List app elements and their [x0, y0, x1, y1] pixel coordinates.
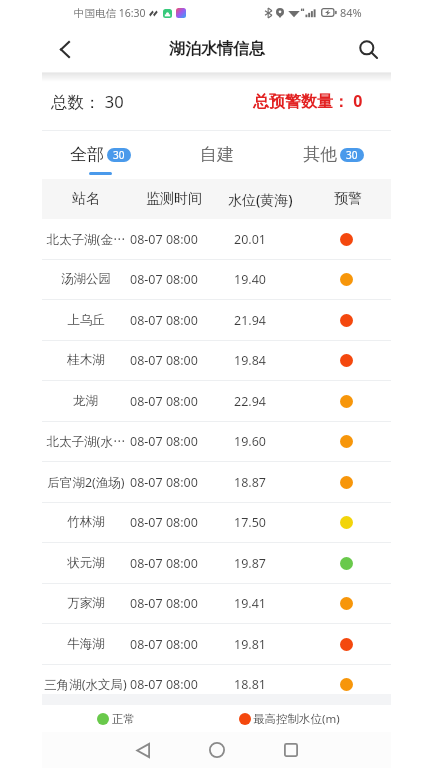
staticText: 17.50 [234, 514, 266, 531]
staticText: 19.87 [234, 555, 266, 572]
button[interactable]: 万家湖 [42, 583, 391, 624]
staticText: 08-07 08:00 [130, 231, 198, 248]
button[interactable]: 全部 [42, 131, 159, 179]
staticText: 正常 [112, 712, 135, 726]
button[interactable]: Back [48, 32, 82, 66]
staticText: 全部 [70, 144, 104, 165]
button[interactable]: 后官湖2(渔场) [42, 462, 391, 503]
staticText: 08-07 08:00 [130, 352, 198, 369]
staticText: 84% [340, 5, 362, 20]
staticText: 北太子湖(水厂东) [43, 433, 129, 450]
button[interactable]: Recents [273, 732, 309, 768]
staticText: 21.94 [234, 312, 266, 329]
staticText: 自建 [200, 144, 234, 165]
staticText: 18.87 [234, 474, 266, 491]
staticText: 19.60 [234, 433, 266, 450]
staticText: 08-07 08:00 [130, 555, 198, 572]
button[interactable]: 竹林湖 [42, 502, 391, 543]
staticText: 竹林湖 [67, 514, 105, 530]
staticText: 预警 [334, 190, 362, 208]
button[interactable]: 北太子湖(水厂东) [42, 421, 391, 462]
staticText: 08-07 08:00 [130, 595, 198, 612]
button[interactable]: 自建 [159, 131, 275, 179]
staticText: 08-07 08:00 [130, 474, 198, 491]
staticText: 20.01 [234, 231, 266, 248]
staticText: 08-07 08:00 [130, 514, 198, 531]
staticText: 其他 [303, 144, 337, 165]
button[interactable]: 桂木湖 [42, 340, 391, 381]
staticText: 08-07 08:00 [130, 393, 198, 410]
button[interactable]: 北太子湖(金银湖) [42, 219, 391, 260]
staticText: 龙湖 [73, 393, 98, 409]
button[interactable]: Back [125, 732, 161, 768]
staticText: 22.94 [234, 393, 266, 410]
staticText: 19.40 [234, 271, 266, 288]
staticText: 30 [113, 148, 125, 162]
staticText: 三角湖(水文局) [44, 676, 127, 693]
staticText: 总数： 30 [51, 90, 124, 113]
staticText: 汤湖公园 [61, 271, 111, 287]
staticText: 北太子湖(金银湖) [43, 231, 129, 248]
staticText: 18.81 [234, 676, 266, 693]
staticText: 中国电信 16:30 [74, 6, 146, 20]
staticText: 08-07 08:00 [130, 676, 198, 693]
staticText: 湖泊水情信息 [169, 39, 265, 59]
staticText: 状元湖 [67, 555, 105, 571]
staticText: 08-07 08:00 [130, 312, 198, 329]
staticText: 桂木湖 [67, 352, 105, 368]
staticText: 19.41 [234, 595, 266, 612]
button[interactable]: 其他 [275, 131, 391, 179]
staticText: 水位(黄海) [228, 190, 293, 209]
staticText: 19.84 [234, 352, 266, 369]
staticText: 监测时间 [146, 190, 202, 208]
staticText: 上乌丘 [67, 312, 105, 328]
staticText: 万家湖 [67, 595, 105, 611]
staticText: 08-07 08:00 [130, 433, 198, 450]
button[interactable]: 状元湖 [42, 543, 391, 584]
staticText: 08-07 08:00 [130, 636, 198, 653]
button[interactable]: 上乌丘 [42, 300, 391, 341]
staticText: 后官湖2(渔场) [47, 474, 125, 491]
button[interactable]: 牛海湖 [42, 624, 391, 665]
staticText: 30 [346, 148, 358, 162]
button[interactable]: 汤湖公园 [42, 259, 391, 300]
button[interactable]: 三角湖(水文局) [42, 664, 391, 694]
staticText: 19.81 [234, 636, 266, 653]
button[interactable]: 龙湖 [42, 381, 391, 422]
staticText: 牛海湖 [67, 636, 105, 652]
button[interactable]: Home [199, 732, 235, 768]
staticText: 08-07 08:00 [130, 271, 198, 288]
staticText: 总预警数量： 0 [253, 90, 363, 112]
staticText: 最高控制水位(m) [253, 711, 340, 727]
button[interactable]: Search [351, 32, 385, 66]
staticText: 站名 [72, 190, 100, 208]
